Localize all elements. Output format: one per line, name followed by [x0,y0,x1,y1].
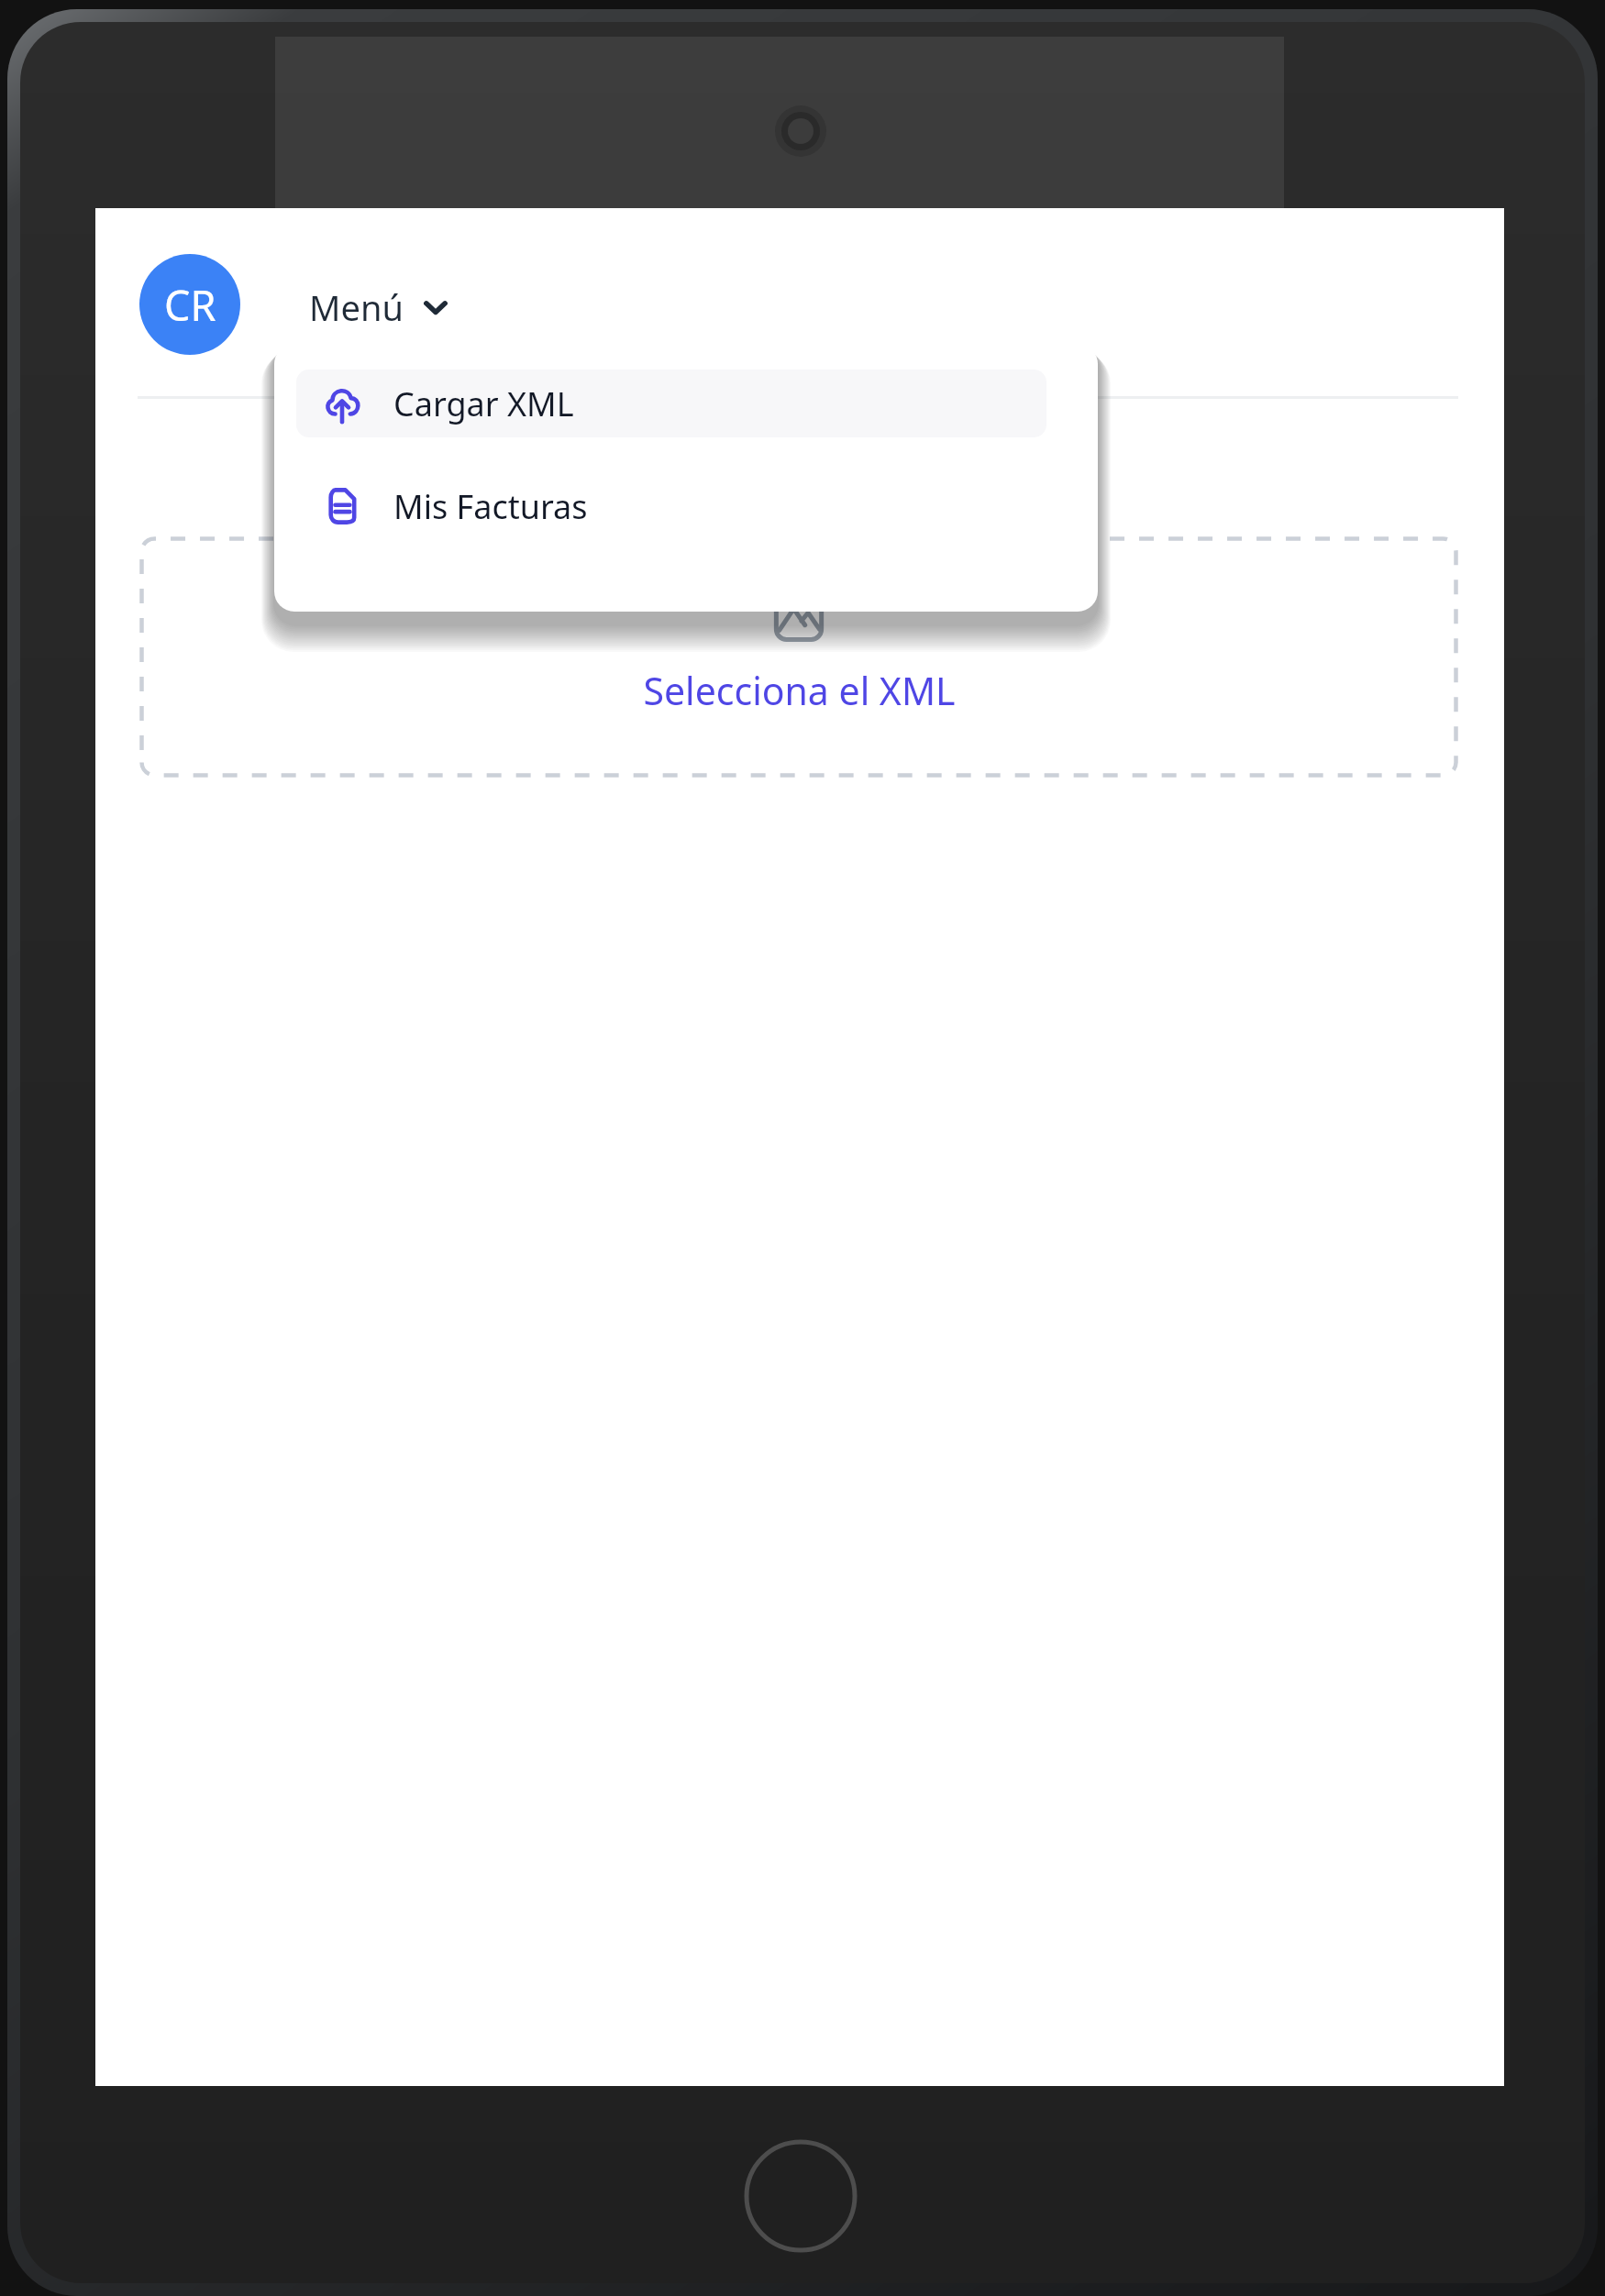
button[interactable]: Mis Facturas [296,472,1046,540]
button[interactable]: Menú [302,274,457,340]
staticText: Mis Facturas [393,484,588,529]
button[interactable]: Perfil CR [139,254,240,355]
button[interactable]: Selecciona el XML [139,536,1458,778]
staticText: Cargar XML [393,381,574,426]
staticText: Menú [309,283,404,331]
button[interactable]: Cargar XML [296,370,1046,437]
staticText: Selecciona el XML [643,665,956,716]
staticText: CR [164,277,216,333]
